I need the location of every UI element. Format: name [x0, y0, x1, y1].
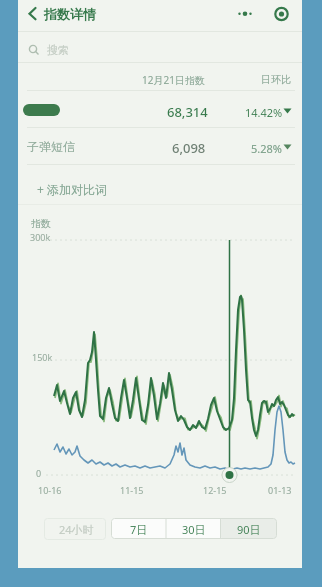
staticText: 01-13: [268, 484, 292, 496]
staticText: 30日: [182, 522, 206, 537]
button[interactable]: 7日: [111, 518, 166, 539]
button[interactable]: 68,314: [18, 91, 302, 127]
staticText: 14.42%: [245, 105, 283, 120]
staticText: 7日: [130, 522, 148, 537]
staticText: 150k: [32, 351, 53, 363]
button[interactable]: 30日: [166, 518, 221, 539]
button[interactable]: + 添加对比词: [18, 165, 302, 204]
staticText: 300k: [30, 231, 51, 243]
staticText: 5.28%: [251, 141, 282, 156]
staticText: 10-16: [38, 484, 62, 496]
staticText: 搜索: [47, 43, 69, 57]
staticText: 0: [36, 467, 42, 479]
button[interactable]: 90日: [221, 518, 277, 539]
button[interactable]: 子弹短信: [18, 128, 302, 164]
staticText: 指数: [31, 217, 51, 230]
staticText: + 添加对比词: [37, 181, 107, 197]
staticText: 子弹短信: [27, 139, 75, 154]
button[interactable]: 搜索: [18, 32, 302, 62]
staticText: 11-15: [120, 484, 144, 496]
staticText: 12月21日指数: [142, 73, 205, 87]
staticText: 90日: [237, 522, 261, 537]
button[interactable]: [18, 0, 60, 30]
button[interactable]: [271, 3, 293, 25]
staticText: 指数详情: [44, 6, 96, 22]
staticText: 日环比: [261, 73, 291, 86]
staticText: 12-15: [203, 484, 227, 496]
button[interactable]: 24小时: [44, 518, 106, 540]
button[interactable]: [232, 4, 276, 25]
staticText: 24小时: [59, 522, 94, 537]
staticText: 6,098: [172, 139, 206, 157]
staticText: 68,314: [167, 103, 208, 121]
